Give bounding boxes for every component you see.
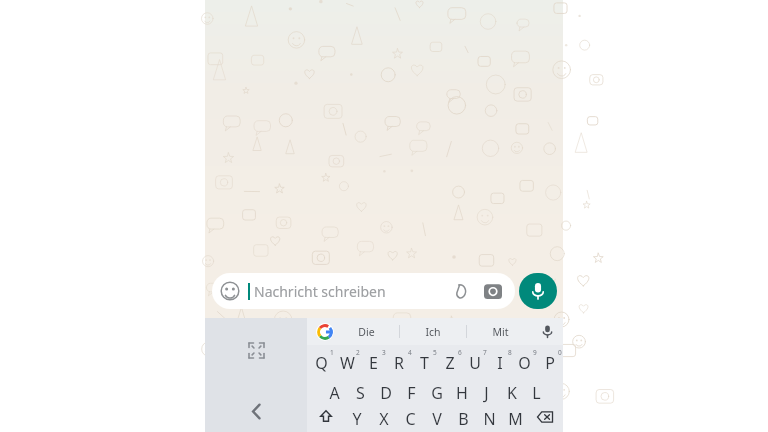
staticText: V: [432, 408, 442, 430]
staticText: X: [379, 408, 389, 430]
staticText: T: [420, 352, 429, 374]
button[interactable]: Fullscreen: [241, 335, 271, 365]
button[interactable]: Voice input: [533, 318, 561, 345]
staticText: 1: [330, 348, 334, 357]
staticText: L: [532, 382, 541, 404]
button[interactable]: P: [537, 348, 562, 378]
staticText: M: [508, 408, 523, 430]
staticText: J: [484, 382, 489, 404]
staticText: R: [394, 352, 404, 374]
button[interactable]: L: [524, 378, 549, 408]
staticText: 7: [483, 348, 487, 357]
button[interactable]: Y: [343, 408, 370, 432]
staticText: Nachricht schreiben: [254, 282, 386, 301]
button[interactable]: J: [474, 378, 499, 408]
button[interactable]: B: [450, 408, 476, 432]
button[interactable]: W: [334, 348, 360, 378]
button[interactable]: Back: [238, 393, 274, 429]
staticText: O: [518, 352, 531, 374]
staticText: P: [545, 352, 555, 374]
button[interactable]: Shift: [308, 408, 343, 432]
staticText: Die: [358, 325, 375, 339]
staticText: I: [497, 352, 503, 374]
button[interactable]: H: [449, 378, 474, 408]
button[interactable]: V: [424, 408, 450, 432]
button[interactable]: A: [321, 378, 347, 408]
button[interactable]: S: [347, 378, 373, 408]
button[interactable]: Camera: [480, 278, 506, 304]
staticText: E: [369, 352, 378, 374]
staticText: S: [356, 382, 365, 404]
staticText: Ich: [425, 325, 441, 339]
staticText: F: [407, 382, 416, 404]
staticText: 0: [558, 348, 562, 357]
button[interactable]: I: [487, 348, 512, 378]
button[interactable]: Emoji: [212, 273, 515, 309]
staticText: D: [380, 382, 392, 404]
button[interactable]: C: [397, 408, 424, 432]
staticText: 9: [533, 348, 537, 357]
button[interactable]: G: [424, 378, 449, 408]
staticText: Z: [445, 352, 455, 374]
staticText: 2: [356, 348, 360, 357]
button[interactable]: Mit: [467, 318, 533, 345]
button[interactable]: K: [499, 378, 524, 408]
staticText: Mit: [492, 325, 509, 339]
staticText: G: [431, 382, 443, 404]
staticText: H: [456, 382, 468, 404]
button[interactable]: Ich: [400, 318, 466, 345]
button[interactable]: Attach: [447, 278, 473, 304]
button[interactable]: N: [476, 408, 502, 432]
button[interactable]: Die: [334, 318, 399, 345]
button[interactable]: Backspace: [528, 408, 562, 432]
button[interactable]: F: [399, 378, 424, 408]
staticText: 3: [382, 348, 386, 357]
staticText: B: [458, 408, 469, 430]
button[interactable]: U: [462, 348, 487, 378]
button[interactable]: X: [370, 408, 397, 432]
button[interactable]: Voice message: [519, 273, 557, 309]
button[interactable]: Google: [315, 322, 334, 341]
button[interactable]: Emoji: [219, 280, 241, 302]
button[interactable]: E: [360, 348, 386, 378]
staticText: 8: [508, 348, 512, 357]
staticText: A: [329, 382, 340, 404]
button[interactable]: T: [412, 348, 437, 378]
staticText: U: [469, 352, 481, 374]
staticText: K: [507, 382, 517, 404]
staticText: N: [483, 408, 496, 430]
staticText: C: [405, 408, 416, 430]
button[interactable]: R: [386, 348, 412, 378]
staticText: Y: [352, 408, 362, 430]
staticText: 4: [408, 348, 412, 357]
button[interactable]: Z: [437, 348, 462, 378]
staticText: 6: [458, 348, 462, 357]
button[interactable]: D: [373, 378, 399, 408]
staticText: Q: [315, 352, 328, 374]
button[interactable]: Q: [308, 348, 334, 378]
staticText: 5: [433, 348, 437, 357]
button[interactable]: M: [502, 408, 528, 432]
button[interactable]: O: [512, 348, 537, 378]
staticText: W: [340, 352, 355, 374]
